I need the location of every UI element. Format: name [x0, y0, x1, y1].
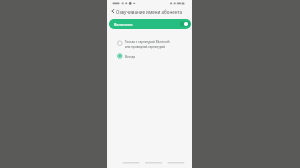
button[interactable]: [109, 7, 118, 16]
button[interactable]: Включено: [109, 19, 191, 29]
button[interactable]: Всегда: [107, 51, 192, 61]
staticText: Включено: [114, 22, 133, 27]
button[interactable]: Только с гарнитурой Bluetooth или провод…: [107, 37, 192, 50]
staticText: Всегда: [125, 55, 136, 59]
staticText: Озвучивание имени абонента: [116, 9, 183, 15]
staticText: Только с гарнитурой Bluetooth или провод…: [125, 40, 170, 48]
